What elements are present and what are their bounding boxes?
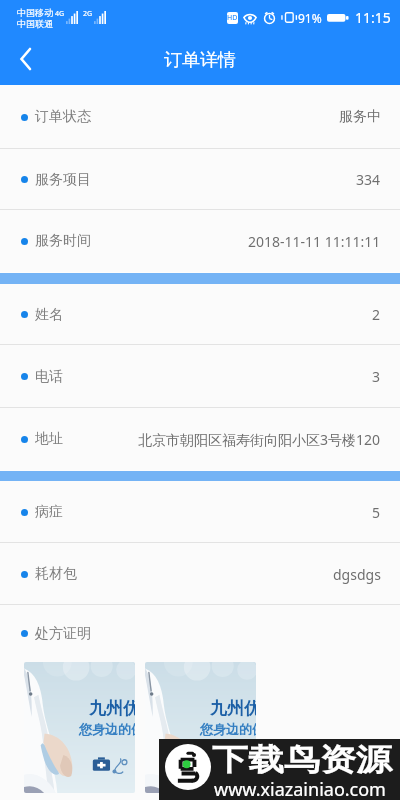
staticText: 处方证明 — [35, 625, 91, 643]
staticText: 服务中 — [339, 108, 381, 126]
button[interactable]: 病症 — [0, 481, 400, 543]
button[interactable]: 服务项目 — [0, 149, 400, 210]
staticText: 您身边的健康管家 — [79, 721, 135, 737]
staticText: 服务时间 — [35, 232, 91, 250]
staticText: 耗材包 — [35, 565, 77, 583]
button[interactable]: Prescription photo — [145, 662, 256, 793]
staticText: 中国联通 — [17, 18, 53, 29]
staticText: 电话 — [35, 368, 63, 386]
button[interactable]: 服务时间 — [0, 210, 400, 272]
staticText: 九州优医 — [89, 698, 135, 719]
button[interactable]: 电话 — [0, 345, 400, 408]
staticText: 334 — [356, 170, 381, 189]
button[interactable]: 订单状态 — [0, 85, 400, 149]
staticText: 2G — [83, 9, 93, 19]
button[interactable]: 处方证明 — [0, 605, 400, 662]
staticText: 服务项目 — [35, 171, 91, 189]
button[interactable]: Prescription photo — [24, 662, 135, 793]
button[interactable]: 姓名 — [0, 284, 400, 345]
staticText: HD — [227, 13, 238, 23]
button[interactable]: 地址 — [0, 408, 400, 470]
staticText: 5 — [372, 503, 381, 522]
staticText: 下载鸟资源 — [212, 741, 392, 779]
staticText: 11:15 — [355, 8, 391, 27]
staticText: 4G — [55, 9, 65, 19]
staticText: 北京市朝阳区福寿街向阳小区3号楼120 — [138, 430, 381, 449]
staticText: 2 — [372, 305, 381, 324]
staticText: 3 — [372, 367, 381, 386]
staticText: 病症 — [35, 503, 63, 521]
staticText: dgsdgs — [333, 565, 381, 584]
staticText: 订单详情 — [164, 49, 236, 72]
staticText: 订单状态 — [35, 108, 91, 126]
staticText: 91% — [298, 10, 322, 26]
staticText: 九州优医 — [210, 698, 256, 719]
button[interactable]: Back — [0, 35, 52, 85]
staticText: 中国移动 — [17, 7, 53, 18]
staticText: 姓名 — [35, 306, 63, 324]
staticText: 您身边的健康管家 — [200, 721, 256, 737]
staticText: 地址 — [35, 430, 63, 448]
staticText: www.xiazainiao.com — [214, 777, 386, 800]
staticText: 2018-11-11 11:11:11 — [248, 232, 381, 251]
button[interactable]: 耗材包 — [0, 543, 400, 605]
